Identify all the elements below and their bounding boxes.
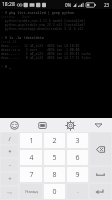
staticText: python/stable,now 3.11.6 arm64 [installe… (1, 19, 111, 23)
button[interactable]: Enter (90, 184, 111, 199)
staticText: python-ensurepip-wheels/stable 3.11.6 al… (1, 27, 111, 31)
button[interactable]: 0 (44, 184, 65, 199)
button[interactable]: / (1, 133, 18, 144)
button[interactable]: 9 (67, 167, 88, 182)
button[interactable]: 6 (67, 150, 88, 165)
staticText: . (77, 188, 79, 195)
button[interactable]: Space (90, 167, 111, 182)
staticText: 23 (104, 2, 110, 8)
button[interactable]: 8 (44, 167, 65, 182)
staticText: 3 (75, 136, 80, 146)
staticText: total 48 (1, 40, 111, 44)
staticText: drwx------ 8 u0_a123 4096 Jan 14 17:55 f… (1, 56, 111, 60)
staticText: 8 (52, 170, 57, 180)
staticText: 0 (52, 187, 57, 197)
staticText: 6 (75, 153, 80, 163)
staticText: Listing... Done (1, 15, 111, 19)
button[interactable]: 7 (20, 167, 42, 182)
button[interactable]: Settings (56, 118, 84, 132)
button[interactable]: 5 (44, 150, 65, 165)
staticText: 2 (52, 136, 57, 146)
button[interactable]: Backspace (90, 133, 111, 165)
staticText: python-pip/stable,now 23.2 all [installe… (1, 23, 111, 27)
button[interactable]: + (1, 173, 18, 185)
staticText: / (8, 135, 11, 143)
staticText: 1 (29, 136, 34, 146)
staticText: 4 (29, 153, 34, 163)
button[interactable]: Emoji (0, 118, 28, 132)
staticText: Назад (25, 189, 38, 195)
staticText: ~ $ pkg list-installed | grep python (1, 10, 111, 15)
staticText: 18:28 (2, 1, 15, 8)
staticText: ~ $ ls -la /data/data (1, 35, 111, 40)
staticText: ~= (7, 190, 12, 196)
staticText: drwx------ 12 u0_a123 4096 Jan 14 18:02 … (1, 44, 111, 48)
button[interactable]: - (1, 159, 18, 171)
button[interactable]: ~= (1, 187, 18, 199)
staticText: ~ $ _ (1, 64, 111, 69)
staticText: * (8, 148, 12, 156)
button[interactable]: 4 (20, 150, 42, 165)
staticText: 7 (29, 170, 34, 180)
staticText: 9 (75, 170, 80, 180)
button[interactable]: Hide keyboard (84, 118, 112, 132)
button[interactable]: 3 (67, 133, 88, 148)
button[interactable]: 1 (20, 133, 42, 148)
button[interactable]: * (1, 146, 18, 157)
button[interactable]: Назад (20, 184, 42, 199)
staticText: + (8, 175, 12, 183)
staticText: drwx------ 5 u0_a123 4096 Jan 12 09:41 c… (1, 52, 111, 56)
staticText: 0% (65, 2, 72, 8)
staticText: drwxr-xr-x 3 root 4096 Jan 1 00:00 .. (1, 48, 111, 52)
button[interactable]: Clipboard (28, 118, 56, 132)
staticText: - (9, 161, 11, 169)
staticText: 5 (52, 153, 57, 163)
button[interactable]: 2 (44, 133, 65, 148)
